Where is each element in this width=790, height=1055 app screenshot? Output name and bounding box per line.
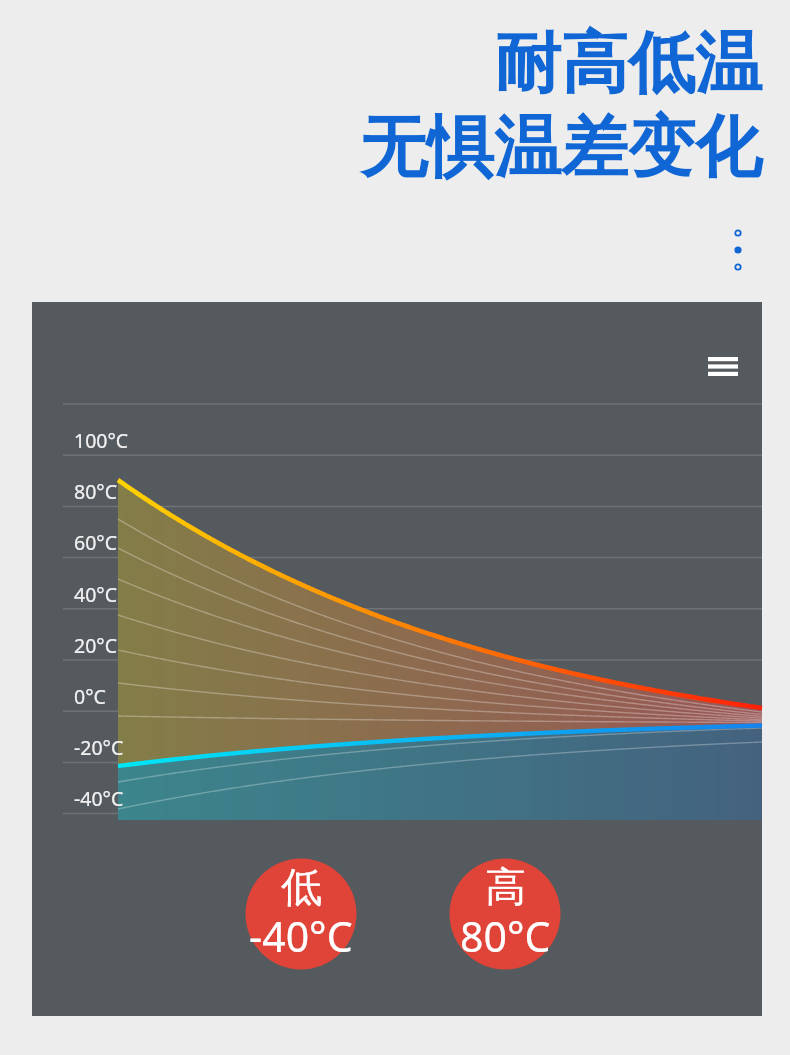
staticText: 40°C [74, 581, 117, 608]
staticText: 低 [281, 862, 322, 914]
staticText: 耐高低温 [494, 21, 762, 105]
staticText: 80°C [460, 908, 551, 964]
staticText: 60°C [74, 529, 117, 556]
staticText: -40°C [249, 908, 353, 964]
button[interactable]: Go to slide [729, 224, 747, 242]
button[interactable]: Current slide [729, 241, 747, 259]
staticText: 80°C [74, 478, 117, 505]
staticText: -20°C [74, 734, 124, 761]
staticText: 20°C [74, 632, 117, 659]
button[interactable]: Go to slide [729, 258, 747, 276]
button[interactable]: 低 [231, 844, 371, 984]
staticText: 无惧温差变化 [360, 105, 762, 189]
staticText: 100°C [74, 427, 129, 454]
staticText: 0°C [74, 683, 106, 710]
button[interactable]: 高 [435, 844, 575, 984]
staticText: 高 [485, 862, 526, 914]
button[interactable]: Menu [698, 346, 748, 387]
staticText: -40°C [74, 785, 124, 812]
